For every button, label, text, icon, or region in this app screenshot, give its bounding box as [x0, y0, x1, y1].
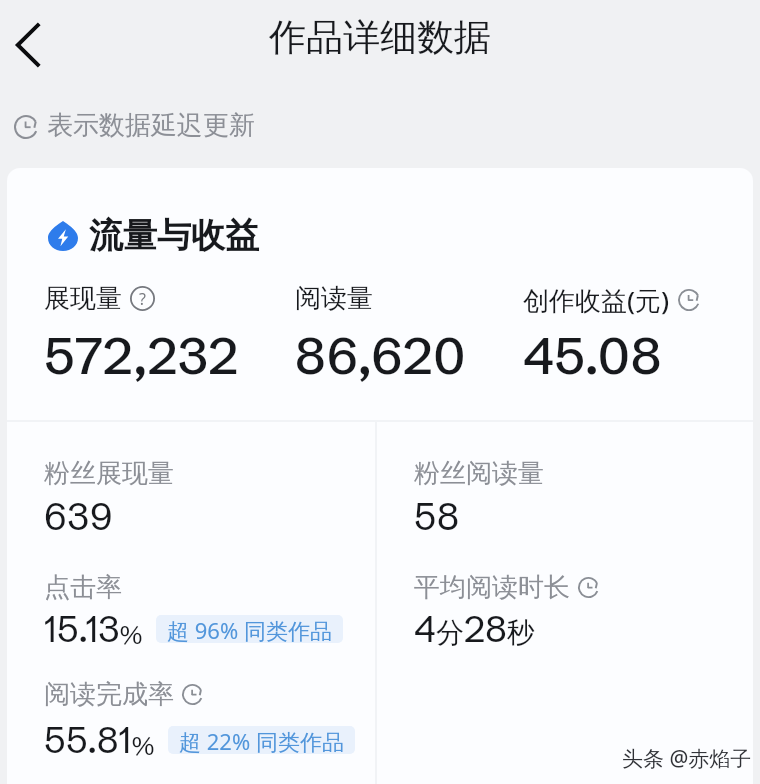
staticText: 阅读完成率	[44, 678, 174, 711]
staticText: 平均阅读时长	[414, 571, 570, 604]
staticText: %	[120, 619, 143, 651]
staticText: 流量与收益	[89, 214, 259, 257]
staticText: 展现量	[44, 282, 122, 315]
staticText: 58	[414, 493, 460, 540]
staticText: 表示数据延迟更新	[47, 109, 255, 142]
staticText: 4	[414, 606, 436, 652]
staticText: 86,620	[295, 323, 466, 387]
button[interactable]: 超 96% 同类作品	[156, 615, 343, 643]
staticText: 秒	[507, 615, 535, 650]
staticText: 粉丝阅读量	[414, 457, 544, 490]
staticText: 超 22% 同类作品	[179, 726, 344, 754]
button[interactable]: Back	[0, 10, 70, 80]
staticText: 15.13	[44, 606, 120, 652]
staticText: 639	[44, 493, 113, 540]
button[interactable]: 超 22% 同类作品	[168, 726, 355, 754]
staticText: 作品详细数据	[269, 14, 491, 61]
staticText: 55.81	[44, 717, 132, 763]
staticText: 创作收益(元)	[523, 282, 670, 318]
staticText: 572,232	[44, 323, 239, 387]
staticText: 28	[464, 606, 507, 652]
staticText: 头条 @赤焰子	[622, 744, 752, 773]
staticText: 超 96% 同类作品	[167, 615, 332, 643]
staticText: 阅读量	[295, 282, 373, 315]
staticText: 粉丝展现量	[44, 457, 174, 490]
staticText: 点击率	[44, 571, 122, 604]
staticText: ?	[139, 288, 146, 310]
staticText: %	[132, 730, 155, 762]
staticText: 45.08	[523, 323, 662, 387]
staticText: 分	[436, 615, 464, 650]
